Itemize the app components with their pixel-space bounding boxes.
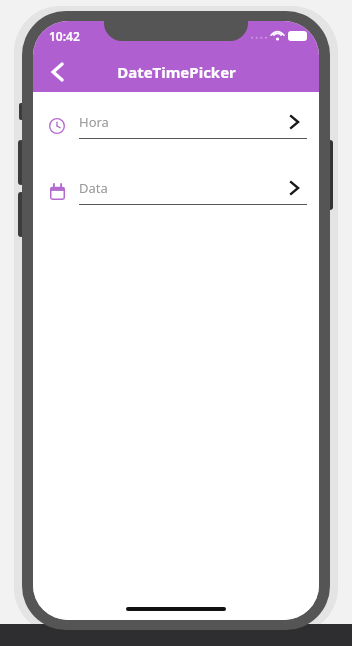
other: Open Hora picker	[290, 115, 299, 129]
button[interactable]: Data	[33, 172, 319, 212]
staticText: Data	[79, 179, 290, 197]
other: Open Data picker	[290, 181, 299, 195]
button[interactable]: Hora	[33, 106, 319, 146]
staticText: 10:42	[49, 28, 80, 44]
button[interactable]: Back	[37, 52, 77, 92]
staticText: Hora	[79, 113, 290, 131]
staticText: DateTimePicker	[117, 62, 236, 82]
